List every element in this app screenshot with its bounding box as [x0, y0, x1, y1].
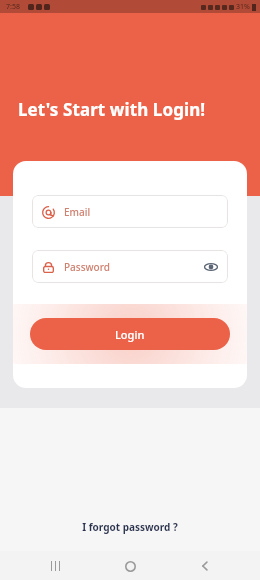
staticText: Let's Start with Login!	[18, 98, 206, 121]
button[interactable]: Show password	[203, 259, 219, 275]
staticText: Email	[64, 205, 91, 219]
staticText: I forgot password ?	[82, 520, 178, 534]
button[interactable]: I forgot password ?	[0, 516, 260, 538]
button[interactable]: Login	[30, 318, 230, 350]
button[interactable]: Home	[118, 554, 142, 578]
staticText: 31%	[236, 2, 250, 12]
staticText: Password	[64, 260, 110, 274]
button[interactable]: Email	[32, 195, 228, 228]
button[interactable]: Password	[32, 250, 228, 283]
staticText: 7:58	[6, 2, 20, 12]
button[interactable]: Back	[193, 554, 217, 578]
button[interactable]: Recent apps	[43, 554, 67, 578]
staticText: Login	[115, 327, 145, 342]
